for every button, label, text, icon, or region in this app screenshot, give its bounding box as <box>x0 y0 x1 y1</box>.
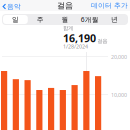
button[interactable]: 데이터 추가 <box>89 0 130 12</box>
staticText: 음악 <box>7 2 21 11</box>
staticText: 년 <box>111 15 118 24</box>
staticText: 걸음 <box>57 1 73 10</box>
staticText: 16,190 <box>63 31 96 45</box>
staticText: 주 <box>37 15 44 24</box>
button[interactable]: 월 <box>53 15 77 24</box>
staticText: 월 <box>61 15 68 24</box>
staticText: 합계 <box>63 25 73 32</box>
staticText: 일 <box>12 15 19 24</box>
button[interactable]: 음악 <box>0 0 23 13</box>
button[interactable]: 주 <box>28 15 53 24</box>
staticText: 6개월 <box>81 15 99 24</box>
staticText: 10,000 <box>111 91 127 99</box>
button[interactable]: 6개월 <box>77 15 102 24</box>
button[interactable]: 일 <box>3 15 28 24</box>
button[interactable]: 년 <box>102 15 127 24</box>
staticText: 걸음 <box>97 38 107 44</box>
staticText: 데이터 추가 <box>91 1 128 10</box>
staticText: 20,000 <box>111 53 127 61</box>
staticText: 1/28/2024 <box>63 43 88 50</box>
